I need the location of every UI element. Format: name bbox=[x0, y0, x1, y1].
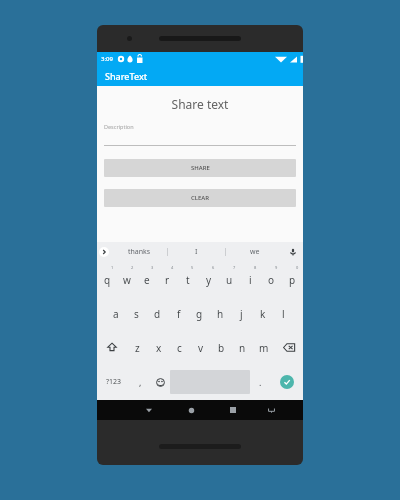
staticText: CLEAR bbox=[191, 194, 210, 202]
staticText: h bbox=[217, 307, 224, 321]
button[interactable]: b bbox=[211, 330, 232, 364]
staticText: c bbox=[177, 341, 182, 355]
button[interactable]: s bbox=[126, 296, 147, 330]
staticText: Share text bbox=[97, 96, 303, 112]
staticText: 9 bbox=[275, 265, 278, 270]
staticText: 5 bbox=[191, 265, 194, 270]
button[interactable]: 2 bbox=[117, 262, 137, 296]
button[interactable]: x bbox=[148, 330, 169, 364]
staticText: p bbox=[289, 273, 296, 287]
staticText: e bbox=[144, 273, 150, 287]
button[interactable]: 4 bbox=[157, 262, 177, 296]
button[interactable]: 1 bbox=[97, 262, 117, 296]
staticText: z bbox=[135, 341, 140, 355]
staticText: 4 bbox=[171, 265, 174, 270]
staticText: 0 bbox=[296, 265, 299, 270]
staticText: m bbox=[259, 341, 269, 355]
button[interactable]: Back bbox=[128, 400, 170, 420]
button[interactable]: Shift bbox=[97, 330, 127, 364]
staticText: 6 bbox=[212, 265, 215, 270]
button[interactable]: 9 bbox=[261, 262, 282, 296]
button[interactable]: Expand suggestions bbox=[97, 242, 111, 262]
button[interactable]: k bbox=[252, 296, 273, 330]
button[interactable]: Keyboard switcher bbox=[254, 400, 288, 420]
staticText: x bbox=[156, 341, 162, 355]
button[interactable]: c bbox=[169, 330, 190, 364]
button[interactable]: j bbox=[231, 296, 252, 330]
button[interactable]: 6 bbox=[198, 262, 219, 296]
button[interactable]: d bbox=[147, 296, 168, 330]
button[interactable]: m bbox=[253, 330, 274, 364]
button[interactable]: f bbox=[168, 296, 189, 330]
button[interactable]: . bbox=[250, 364, 270, 400]
staticText: g bbox=[196, 307, 203, 321]
staticText: , bbox=[139, 376, 142, 388]
button[interactable]: l bbox=[273, 296, 294, 330]
button[interactable]: 7 bbox=[219, 262, 240, 296]
button[interactable]: Home bbox=[170, 400, 212, 420]
button[interactable]: 0 bbox=[282, 262, 303, 296]
staticText: 7 bbox=[233, 265, 236, 270]
staticText: 3 bbox=[151, 265, 154, 270]
staticText: SHARE bbox=[191, 164, 210, 172]
button[interactable]: z bbox=[127, 330, 148, 364]
button[interactable]: g bbox=[189, 296, 210, 330]
button[interactable]: , bbox=[130, 364, 150, 400]
staticText: l bbox=[282, 307, 285, 321]
staticText: d bbox=[154, 307, 161, 321]
button[interactable]: v bbox=[190, 330, 211, 364]
staticText: Description bbox=[104, 123, 134, 130]
button[interactable]: Backspace bbox=[274, 330, 303, 364]
staticText: . bbox=[259, 376, 262, 388]
staticText: r bbox=[165, 273, 170, 287]
button[interactable]: Recent apps bbox=[212, 400, 254, 420]
staticText: w bbox=[123, 273, 131, 287]
staticText: i bbox=[249, 273, 252, 287]
button[interactable]: SHARE bbox=[104, 159, 296, 177]
staticText: a bbox=[113, 307, 119, 321]
staticText: u bbox=[226, 273, 233, 287]
staticText: b bbox=[218, 341, 225, 355]
staticText: v bbox=[198, 341, 204, 355]
button[interactable]: we bbox=[226, 242, 283, 262]
staticText: t bbox=[186, 273, 190, 287]
staticText: o bbox=[268, 273, 275, 287]
button[interactable]: Enter bbox=[270, 364, 303, 400]
button[interactable]: 3 bbox=[137, 262, 157, 296]
button[interactable]: ?123 bbox=[97, 364, 130, 400]
button[interactable]: n bbox=[232, 330, 253, 364]
staticText: thanks bbox=[128, 247, 151, 257]
button[interactable]: I bbox=[168, 242, 225, 262]
button[interactable]: 5 bbox=[177, 262, 198, 296]
staticText: we bbox=[250, 247, 260, 257]
button[interactable]: a bbox=[106, 296, 126, 330]
staticText: ShareText bbox=[105, 70, 148, 82]
staticText: y bbox=[206, 273, 212, 287]
button[interactable]: Emoji bbox=[150, 364, 170, 400]
staticText: k bbox=[260, 307, 266, 321]
staticText: n bbox=[239, 341, 246, 355]
staticText: 2 bbox=[131, 265, 134, 270]
staticText: 3:09 bbox=[101, 55, 113, 63]
staticText: I bbox=[195, 247, 198, 257]
staticText: j bbox=[240, 307, 243, 321]
staticText: ?123 bbox=[106, 377, 122, 387]
staticText: 8 bbox=[254, 265, 257, 270]
button[interactable]: thanks bbox=[111, 242, 167, 262]
button[interactable]: Voice input bbox=[283, 242, 303, 262]
staticText: q bbox=[104, 273, 111, 287]
button[interactable]: 8 bbox=[240, 262, 261, 296]
staticText: f bbox=[177, 307, 181, 321]
staticText: 1 bbox=[111, 265, 114, 270]
button[interactable]: CLEAR bbox=[104, 189, 296, 207]
staticText: s bbox=[134, 307, 139, 321]
button[interactable]: h bbox=[210, 296, 231, 330]
